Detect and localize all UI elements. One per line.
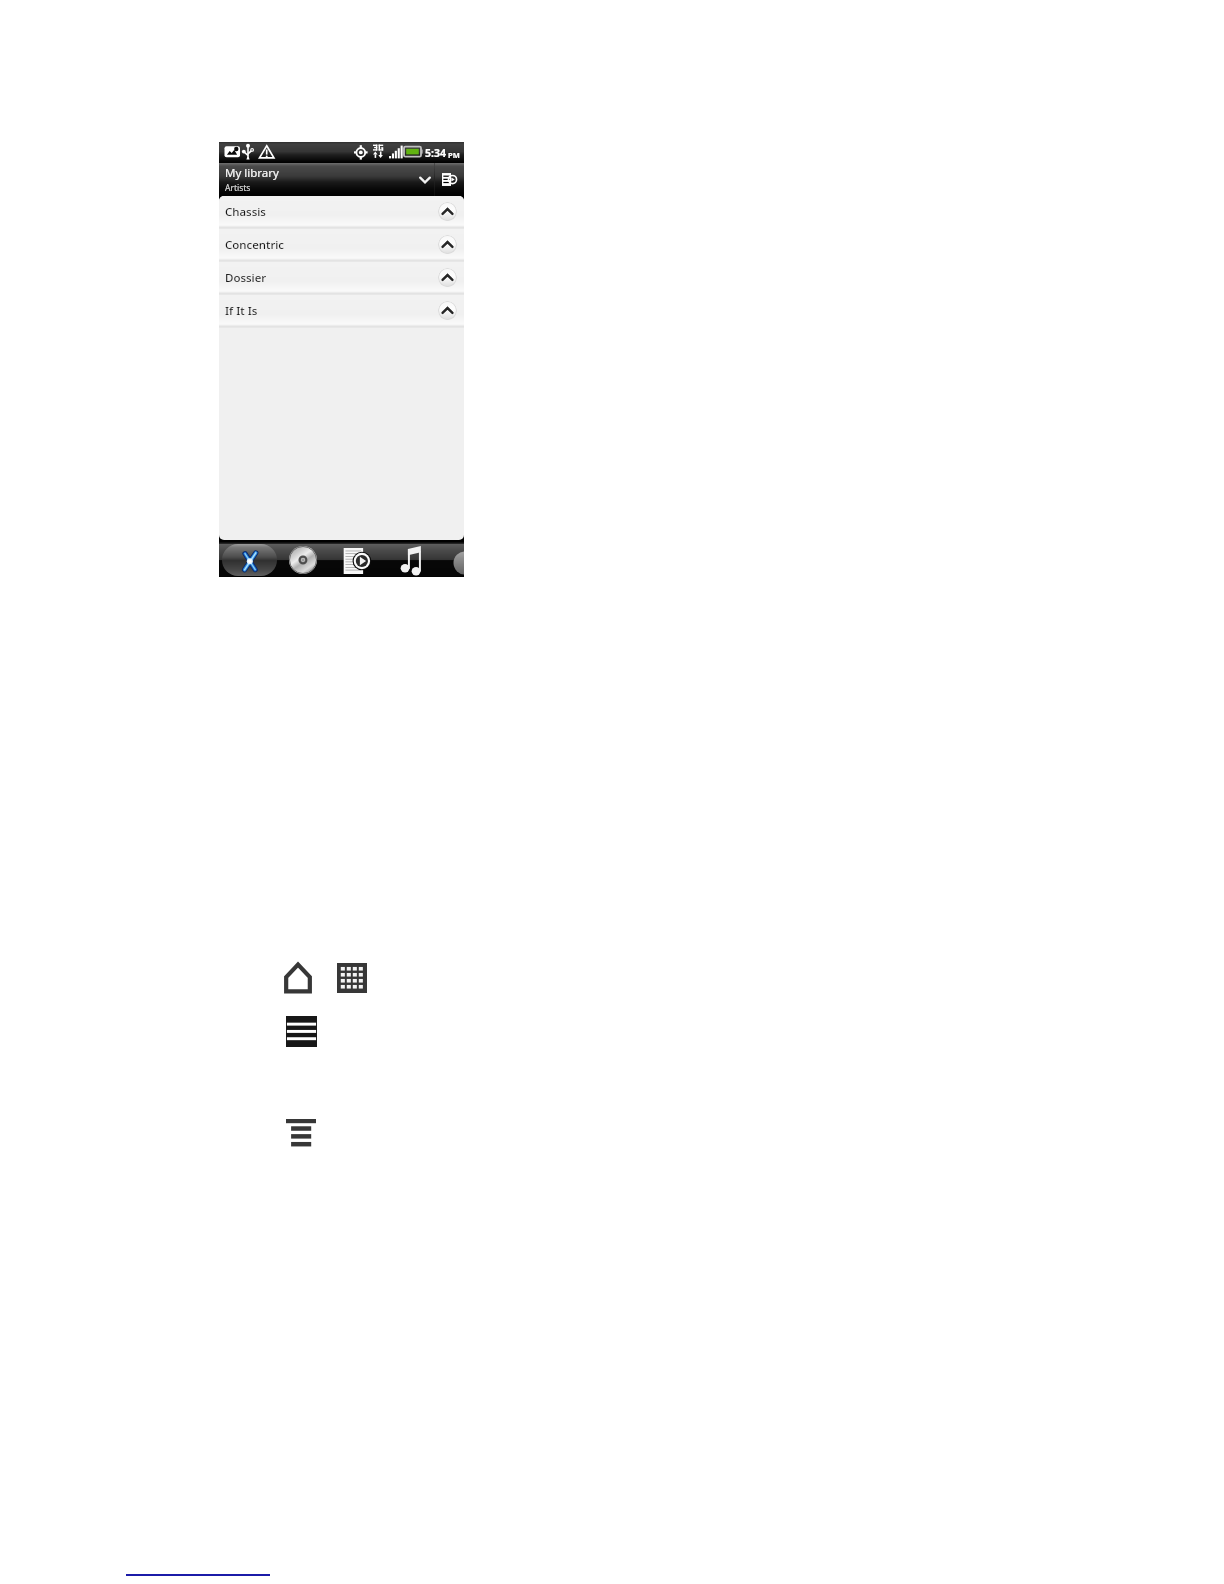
staticText: If It Is — [225, 303, 258, 319]
button[interactable]: Home — [285, 963, 311, 993]
button[interactable]: If It Is — [219, 295, 464, 328]
button[interactable]: My library — [222, 544, 277, 576]
button[interactable]: Expand If It Is — [438, 301, 457, 320]
button[interactable]: Chassis — [219, 196, 464, 229]
staticText: Concentric — [225, 237, 285, 253]
staticText: Artists — [225, 182, 251, 194]
button[interactable]: Menu — [286, 1016, 317, 1047]
button[interactable]: More — [452, 543, 464, 577]
staticText: PM — [448, 150, 460, 160]
button[interactable]: All apps — [337, 963, 367, 993]
button[interactable]: Songs — [399, 545, 422, 576]
button[interactable]: Sort — [286, 1119, 316, 1147]
staticText: 5:34 — [425, 146, 446, 160]
button[interactable]: Expand Chassis — [438, 202, 457, 221]
button[interactable]: Concentric — [219, 229, 464, 262]
staticText: Dossier — [225, 270, 267, 286]
button[interactable]: Now playing — [435, 163, 463, 196]
staticText: Chassis — [225, 204, 266, 220]
staticText: My library — [225, 165, 279, 181]
button[interactable]: Albums — [288, 545, 318, 575]
button[interactable]: Change library view — [413, 163, 437, 196]
button[interactable]: Expand Concentric — [438, 235, 457, 254]
button[interactable]: Now playing — [343, 547, 370, 574]
button[interactable]: Dossier — [219, 262, 464, 295]
button[interactable]: Expand Dossier — [438, 268, 457, 287]
